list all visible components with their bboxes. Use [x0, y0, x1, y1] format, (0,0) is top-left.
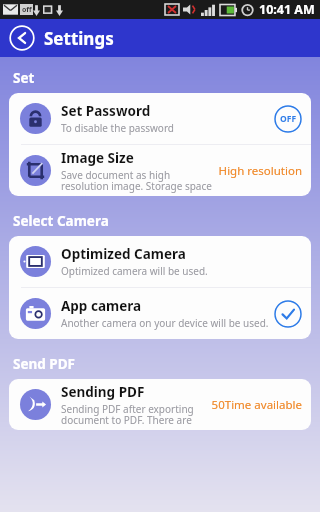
staticText: Sending PDF after exporting document to …: [61, 402, 194, 427]
button[interactable]: App camera: [9, 288, 311, 339]
staticText: Optimized camera will be used.: [61, 264, 208, 278]
staticText: 10:41 AM: [259, 1, 315, 18]
staticText: Set Password: [61, 102, 151, 120]
staticText: Image Size: [61, 149, 134, 167]
staticText: Settings: [44, 27, 114, 50]
staticText: Optimized Camera: [61, 245, 186, 263]
button[interactable]: Back: [8, 24, 36, 52]
staticText: Select Camera: [13, 212, 109, 230]
staticText: Sending PDF: [61, 383, 145, 401]
staticText: 50Time available: [211, 397, 302, 413]
staticText: Save document as high resolution image. …: [61, 168, 212, 193]
staticText: Send PDF: [13, 355, 75, 373]
staticText: OFF: [280, 113, 297, 125]
staticText: High resolution: [218, 163, 302, 179]
staticText: App camera: [61, 297, 142, 315]
staticText: off: [22, 5, 32, 15]
button[interactable]: Sending PDF: [9, 379, 311, 430]
button[interactable]: Selected: [274, 300, 302, 328]
staticText: To disable the password: [61, 121, 174, 135]
staticText: Set: [13, 69, 35, 87]
staticText: Another camera on your device will be us…: [61, 316, 269, 330]
button[interactable]: Toggle password: [274, 105, 302, 133]
button[interactable]: Set Password: [9, 93, 311, 144]
button[interactable]: Image Size: [9, 145, 311, 196]
button[interactable]: Optimized Camera: [9, 236, 311, 287]
